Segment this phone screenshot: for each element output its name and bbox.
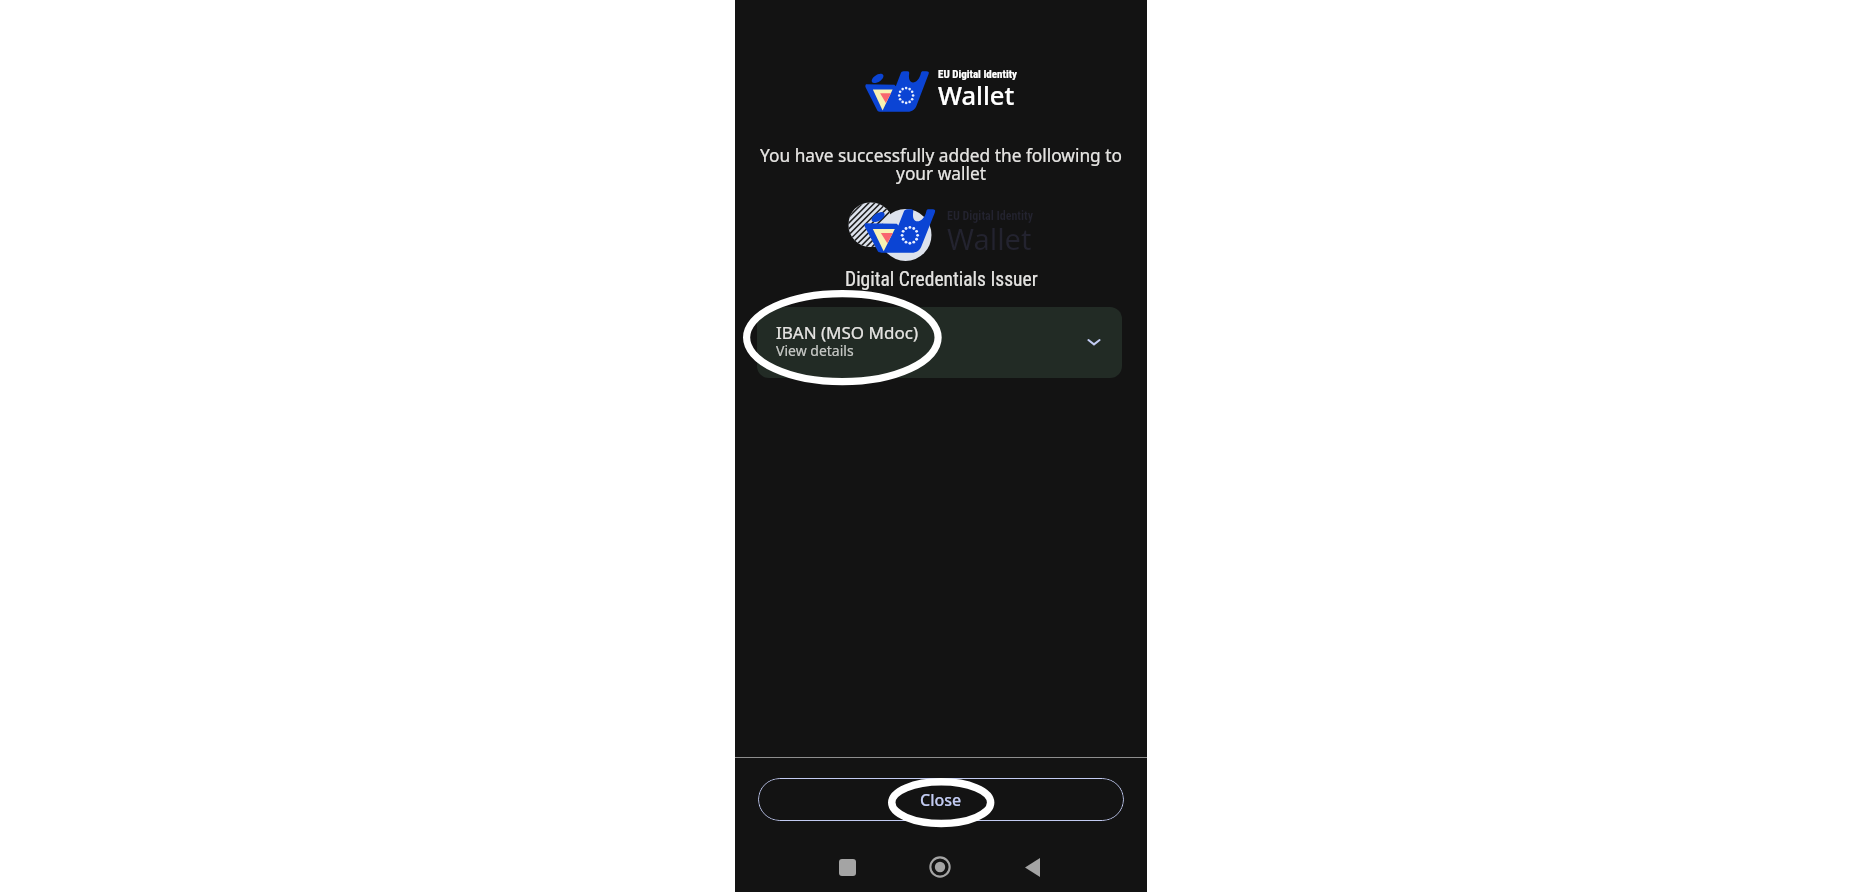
button[interactable]: Back <box>1014 849 1050 885</box>
staticText: Digital Credentials Issuer <box>845 268 1038 291</box>
staticText: EU Digital Identity <box>947 209 1034 223</box>
button[interactable]: Home <box>922 849 958 885</box>
staticText: EU Digital Identity <box>938 68 1017 81</box>
staticText: Close <box>920 789 962 811</box>
staticText: Wallet <box>947 219 1032 258</box>
staticText: View details <box>776 341 854 360</box>
staticText: IBAN (MSO Mdoc) <box>776 321 918 344</box>
button[interactable]: Recent apps <box>829 849 865 885</box>
button[interactable]: Close <box>758 778 1124 821</box>
button[interactable]: IBAN (MSO Mdoc) <box>757 307 1122 378</box>
staticText: You have successfully added the followin… <box>757 144 1125 185</box>
staticText: Wallet <box>938 78 1015 113</box>
